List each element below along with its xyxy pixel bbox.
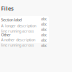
staticText: Other [1, 32, 11, 37]
staticText: Files [1, 5, 14, 12]
staticText: abc [41, 16, 47, 21]
staticText: abc [41, 43, 47, 48]
staticText: abc [41, 27, 47, 32]
staticText: abc [41, 21, 47, 27]
staticText: abc [41, 37, 47, 43]
staticText: A longer description line running across [1, 23, 36, 34]
staticText: abc [41, 32, 47, 37]
staticText: Another description line running across [1, 37, 35, 48]
staticText: Section label [1, 17, 22, 22]
